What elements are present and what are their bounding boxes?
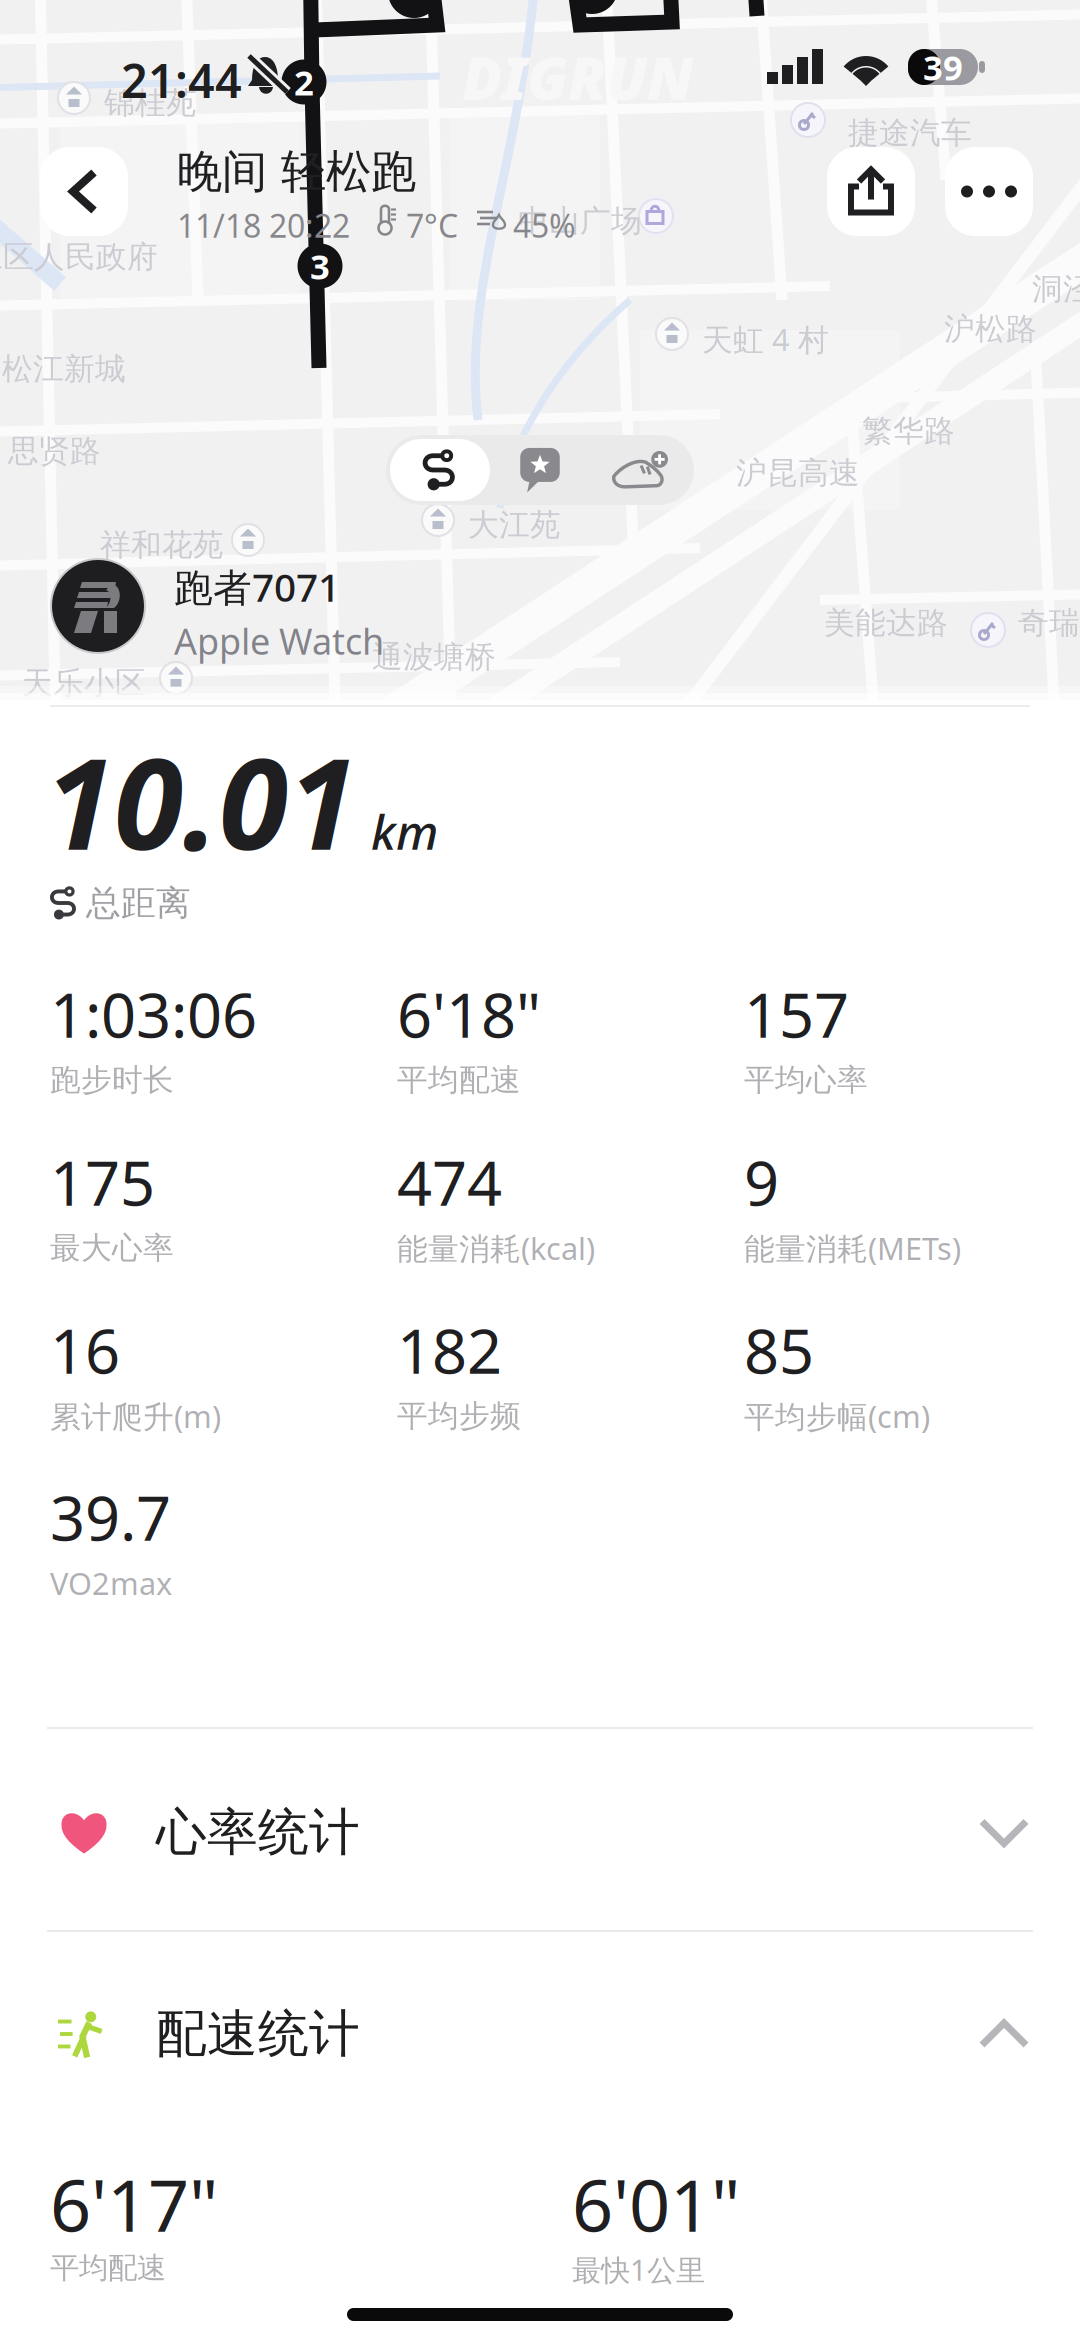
staticText: 6'01" xyxy=(572,2156,740,2252)
button[interactable]: 配速统计 xyxy=(0,1934,1080,2134)
button[interactable]: Route xyxy=(390,439,490,501)
staticText: 沪松路 xyxy=(944,310,1037,348)
button[interactable]: Shoes xyxy=(590,439,690,501)
staticText: 1:03:06 xyxy=(50,973,257,1055)
staticText: 总距离 xyxy=(86,882,191,925)
staticText: 天乐小区 xyxy=(22,664,146,702)
staticText: 松江新城 xyxy=(2,350,126,388)
staticText: 天虹 4 村 xyxy=(702,319,829,359)
staticText: 39.7 xyxy=(50,1476,171,1558)
staticText: 心率统计 xyxy=(156,1801,360,1864)
button[interactable]: Comments xyxy=(490,439,590,501)
staticText: 跑者7071 xyxy=(174,561,340,612)
staticText: km xyxy=(371,799,438,863)
staticText: 锦桂苑 xyxy=(104,84,197,122)
staticText: 175 xyxy=(50,1141,155,1223)
staticText: 平均配速 xyxy=(397,1061,521,1099)
staticText: VO2max xyxy=(50,1563,172,1603)
staticText: 累计爬升(m) xyxy=(50,1396,221,1436)
staticText: 能量消耗(METs) xyxy=(744,1228,961,1268)
button[interactable]: Share xyxy=(827,147,915,236)
staticText: 16 xyxy=(50,1309,120,1391)
staticText: 通波塘桥 xyxy=(372,638,496,676)
staticText: 捷途汽车 xyxy=(848,114,972,152)
staticText: 晚间 轻松跑 xyxy=(177,144,416,200)
staticText: 7°C xyxy=(406,204,458,246)
button[interactable]: Back xyxy=(40,147,128,236)
staticText: 思贤路 xyxy=(8,432,101,470)
staticText: 最大心率 xyxy=(50,1229,174,1267)
staticText: 能量消耗(kcal) xyxy=(397,1228,595,1268)
button[interactable]: 心率统计 xyxy=(0,1731,1080,1934)
staticText: 9 xyxy=(744,1141,779,1223)
staticText: 10.01 xyxy=(45,718,357,884)
staticText: 平均配速 xyxy=(50,2250,166,2286)
staticText: 大江苑 xyxy=(468,506,561,544)
staticText: 祥和花苑 xyxy=(100,526,224,564)
staticText: 474 xyxy=(397,1141,502,1223)
staticText: 跑步时长 xyxy=(50,1061,174,1099)
staticText: 奇瑞 xyxy=(1018,604,1080,642)
staticText: 沪昆高速 xyxy=(736,454,860,492)
staticText: 2 xyxy=(294,59,314,105)
staticText: 配速统计 xyxy=(156,2003,360,2065)
staticText: 182 xyxy=(397,1309,502,1391)
staticText: 最快1公里 xyxy=(572,2250,705,2289)
staticText: 江区人民政府 xyxy=(0,238,158,276)
button[interactable]: More options xyxy=(945,147,1033,236)
staticText: 中山广场 xyxy=(518,202,642,240)
staticText: Apple Watch xyxy=(174,617,384,665)
staticText: 85 xyxy=(744,1309,814,1391)
staticText: 平均心率 xyxy=(744,1061,868,1099)
staticText: 45% xyxy=(513,204,576,246)
staticText: 洞泾 xyxy=(1032,270,1080,308)
staticText: 6'18" xyxy=(397,973,541,1055)
staticText: DIGRUN xyxy=(462,38,693,116)
staticText: 157 xyxy=(744,973,849,1055)
staticText: 平均步频 xyxy=(397,1397,521,1435)
staticText: 3 xyxy=(310,243,330,289)
staticText: 39 xyxy=(923,44,963,90)
staticText: 美能达路 xyxy=(824,604,948,642)
staticText: 6'17" xyxy=(50,2156,218,2252)
staticText: 繁华路 xyxy=(862,412,955,450)
staticText: 11/18 20:22 xyxy=(177,204,350,246)
staticText: 平均步幅(cm) xyxy=(744,1396,930,1436)
staticText: 21:44 xyxy=(121,49,242,111)
